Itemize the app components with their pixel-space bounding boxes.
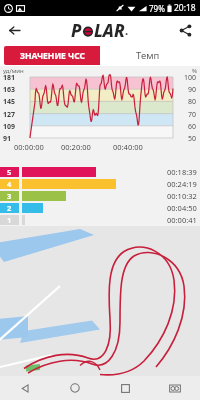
staticText: 00:00:00 <box>14 142 44 152</box>
button[interactable]: 2 <box>0 202 200 214</box>
staticText: 1 <box>7 215 12 225</box>
staticText: 79% <box>149 3 165 14</box>
staticText: 3 <box>7 191 12 201</box>
staticText: 00:24:19 <box>167 179 197 189</box>
button[interactable]: 4 <box>0 178 200 190</box>
button[interactable]: 1 <box>0 214 200 226</box>
staticText: 00:40:00 <box>113 142 143 152</box>
staticText: 00:04:50 <box>167 203 197 213</box>
button[interactable]: 3 <box>0 190 200 202</box>
staticText: 00:10:32 <box>167 191 197 201</box>
staticText: Темп <box>136 49 160 62</box>
button[interactable]: Route map <box>0 226 200 376</box>
staticText: . <box>125 23 129 38</box>
staticText: 90 <box>188 85 197 95</box>
button[interactable]: Recent apps <box>100 376 150 400</box>
staticText: ЗНАЧЕНИЕ ЧСС <box>20 50 85 62</box>
staticText: 00:18:39 <box>167 167 197 177</box>
button[interactable]: ЗНАЧЕНИЕ ЧСС <box>4 46 100 65</box>
staticText: 127 <box>3 110 16 120</box>
staticText: % <box>192 67 197 75</box>
staticText: 00:00:41 <box>167 215 197 225</box>
staticText: 4 <box>7 179 12 189</box>
button[interactable]: Share <box>171 16 200 45</box>
button[interactable]: Темп <box>100 46 196 65</box>
staticText: 70 <box>188 110 197 120</box>
staticText: уд/мин <box>3 67 24 75</box>
staticText: 91 <box>3 134 12 144</box>
staticText: 100 <box>184 73 197 83</box>
staticText: 109 <box>3 122 16 132</box>
staticText: 163 <box>3 85 16 95</box>
staticText: LAR <box>94 19 125 42</box>
staticText: 00:20:00 <box>61 142 91 152</box>
staticText: 5 <box>7 167 12 177</box>
button[interactable]: Back <box>0 376 50 400</box>
staticText: P <box>71 19 82 42</box>
staticText: 80 <box>188 97 197 107</box>
staticText: 60 <box>188 122 197 132</box>
staticText: 181 <box>3 73 16 83</box>
button[interactable]: Home <box>50 376 100 400</box>
button[interactable]: Split screen <box>150 376 200 400</box>
staticText: 145 <box>3 97 16 107</box>
button[interactable]: 5 <box>0 166 200 178</box>
staticText: 20:18 <box>174 2 196 14</box>
staticText: 2 <box>7 203 12 213</box>
button[interactable]: Back <box>0 16 29 45</box>
staticText: 50 <box>188 134 197 144</box>
